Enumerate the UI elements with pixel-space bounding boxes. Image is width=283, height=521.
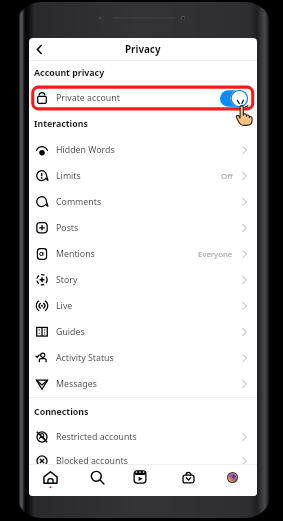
button[interactable]: Posts xyxy=(29,215,257,241)
staticText: Privacy xyxy=(125,43,161,56)
staticText: Hidden Words xyxy=(56,144,115,156)
staticText: Live xyxy=(56,300,73,312)
staticText: Everyone xyxy=(198,249,233,260)
staticText: Activity Status xyxy=(56,352,114,364)
button[interactable]: Limits xyxy=(29,163,257,189)
staticText: Connections xyxy=(34,406,89,418)
button[interactable]: Private account xyxy=(29,85,257,111)
button[interactable]: Messages xyxy=(29,371,257,397)
button[interactable]: Back xyxy=(30,40,48,58)
button[interactable]: Shop xyxy=(177,466,199,488)
staticText: Interactions xyxy=(34,118,88,130)
button[interactable]: Reels xyxy=(129,466,151,488)
staticText: Off xyxy=(221,171,233,182)
button[interactable]: Home xyxy=(39,466,61,488)
staticText: Account privacy xyxy=(34,67,105,79)
staticText: Limits xyxy=(56,170,81,182)
button[interactable]: Comments xyxy=(29,189,257,215)
staticText: Guides xyxy=(56,326,85,338)
button[interactable]: Story xyxy=(29,267,257,293)
staticText: Restricted accounts xyxy=(56,431,137,443)
button[interactable]: Restricted accounts xyxy=(29,425,257,449)
staticText: Private account xyxy=(56,92,120,104)
button[interactable]: Profile xyxy=(221,466,243,488)
button[interactable]: Live xyxy=(29,293,257,319)
button[interactable]: Guides xyxy=(29,319,257,345)
staticText: Messages xyxy=(56,378,97,390)
staticText: Mentions xyxy=(56,248,95,260)
staticText: Blocked accounts xyxy=(56,455,128,467)
button[interactable]: Mentions xyxy=(29,241,257,267)
button[interactable]: Activity Status xyxy=(29,345,257,371)
button[interactable]: Search xyxy=(86,466,108,488)
staticText: Posts xyxy=(56,222,79,234)
button[interactable]: Hidden Words xyxy=(29,137,257,163)
staticText: Story xyxy=(56,274,78,286)
button[interactable]: Blocked accounts xyxy=(29,449,257,473)
staticText: Comments xyxy=(56,196,102,208)
